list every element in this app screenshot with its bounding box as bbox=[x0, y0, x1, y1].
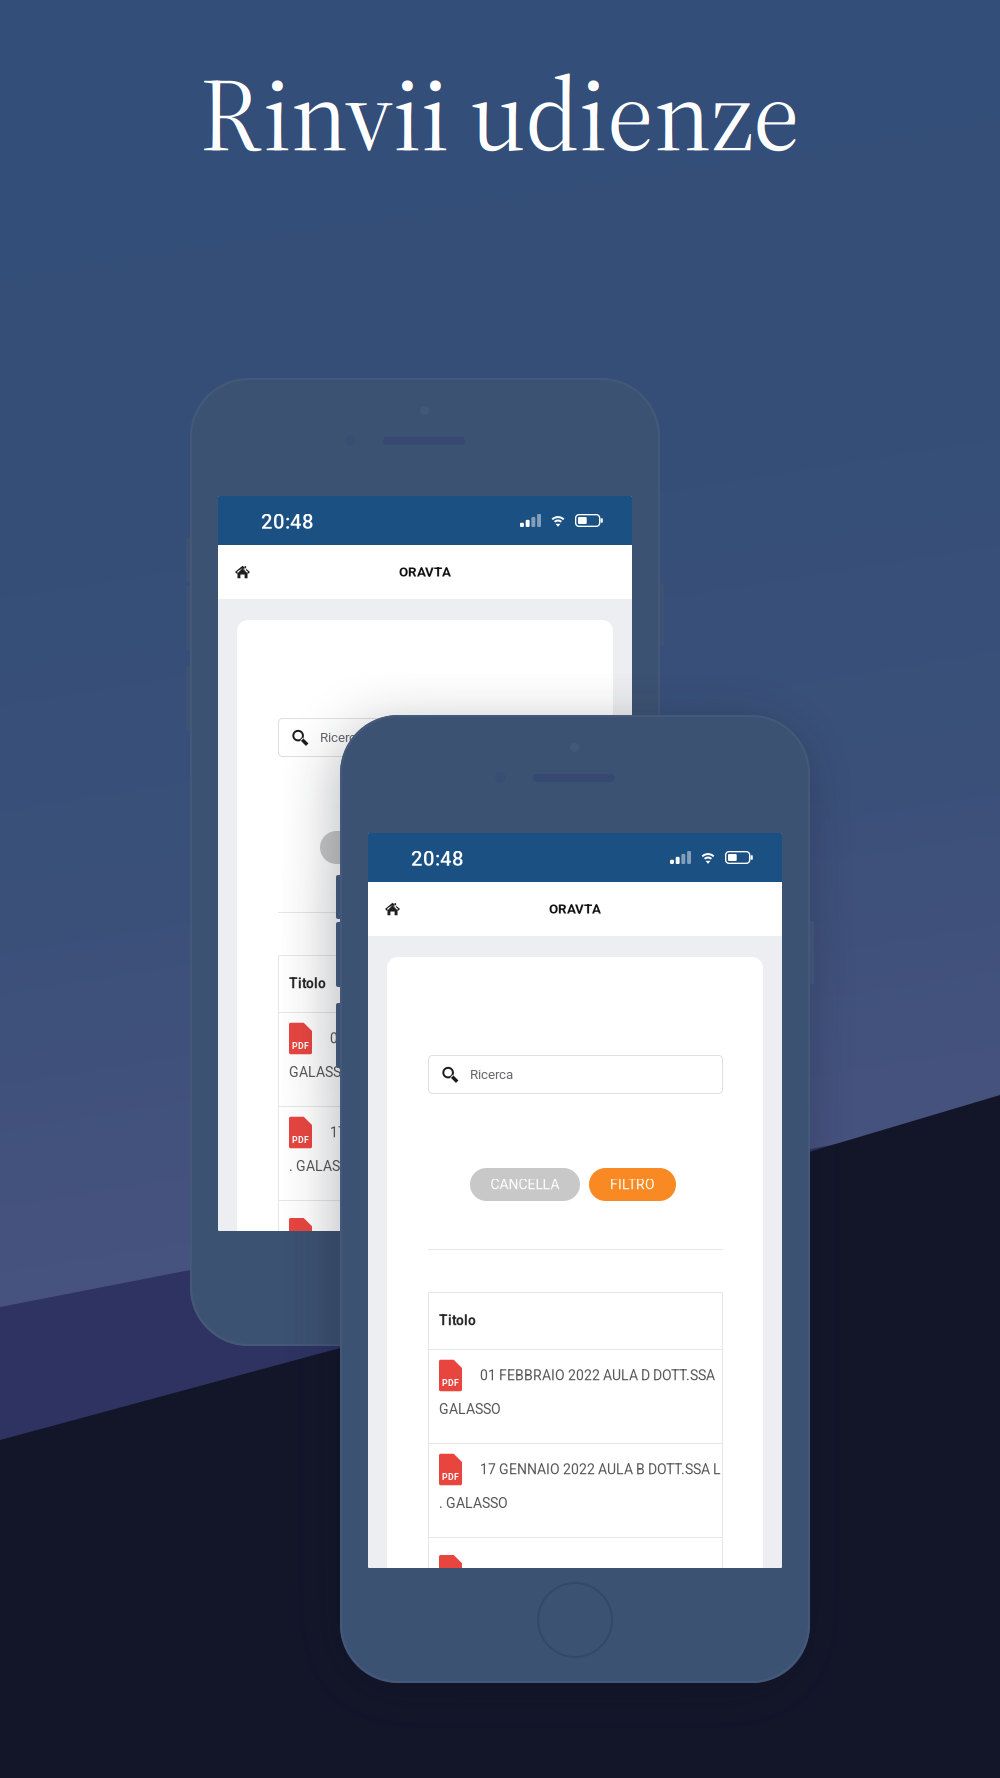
button[interactable]: CANCELLA bbox=[320, 831, 430, 864]
staticText: CANCELLA bbox=[490, 1176, 559, 1193]
staticText: . GALASSO bbox=[289, 1158, 358, 1174]
staticText: PDF bbox=[292, 1135, 309, 1145]
staticText: 01 FEBBRAIO 2022 AULA D DOTT.SSA bbox=[480, 1367, 715, 1384]
staticText: Rinvii udienze bbox=[200, 44, 800, 185]
staticText: Titolo bbox=[289, 975, 326, 992]
staticText: Ricerca bbox=[320, 730, 363, 745]
button[interactable]: CANCELLA bbox=[470, 1168, 580, 1201]
button[interactable]: FILTRO bbox=[589, 1168, 676, 1201]
staticText: GALASSO bbox=[289, 1064, 351, 1080]
button[interactable]: Home bbox=[218, 546, 269, 598]
button[interactable]: Home bbox=[368, 883, 419, 935]
button[interactable]: PDF bbox=[278, 1107, 573, 1200]
staticText: Ricerca bbox=[470, 1067, 513, 1082]
staticText: CANCELLA bbox=[340, 839, 409, 856]
staticText: 20:48 bbox=[261, 510, 314, 534]
staticText: PDF bbox=[442, 1378, 459, 1388]
staticText: 20:48 bbox=[411, 847, 464, 871]
staticText: . GALASSO bbox=[439, 1495, 508, 1511]
staticText: 17 GENNAIO 2022 AULA B DOTT.SSA L bbox=[480, 1461, 721, 1478]
staticText: PDF bbox=[292, 1041, 309, 1051]
staticText: PDF bbox=[442, 1472, 459, 1482]
staticText: 01 FEBBRAIO 2022 AULA D DOTT.SSA bbox=[330, 1030, 565, 1047]
staticText: FILTRO bbox=[610, 1176, 655, 1193]
button[interactable]: PDF bbox=[278, 1013, 573, 1106]
staticText: 17 GENNAIO 2022 AULA B DOTT.SSA L bbox=[330, 1124, 571, 1141]
button[interactable]: PDF bbox=[428, 1350, 723, 1443]
staticText: Titolo bbox=[439, 1312, 476, 1329]
button[interactable]: PDF bbox=[428, 1444, 723, 1537]
staticText: ORAVTA bbox=[549, 901, 601, 917]
staticText: FILTRO bbox=[460, 839, 505, 856]
button[interactable]: FILTRO bbox=[439, 831, 526, 864]
staticText: GALASSO bbox=[439, 1401, 501, 1417]
staticText: ORAVTA bbox=[399, 564, 451, 580]
